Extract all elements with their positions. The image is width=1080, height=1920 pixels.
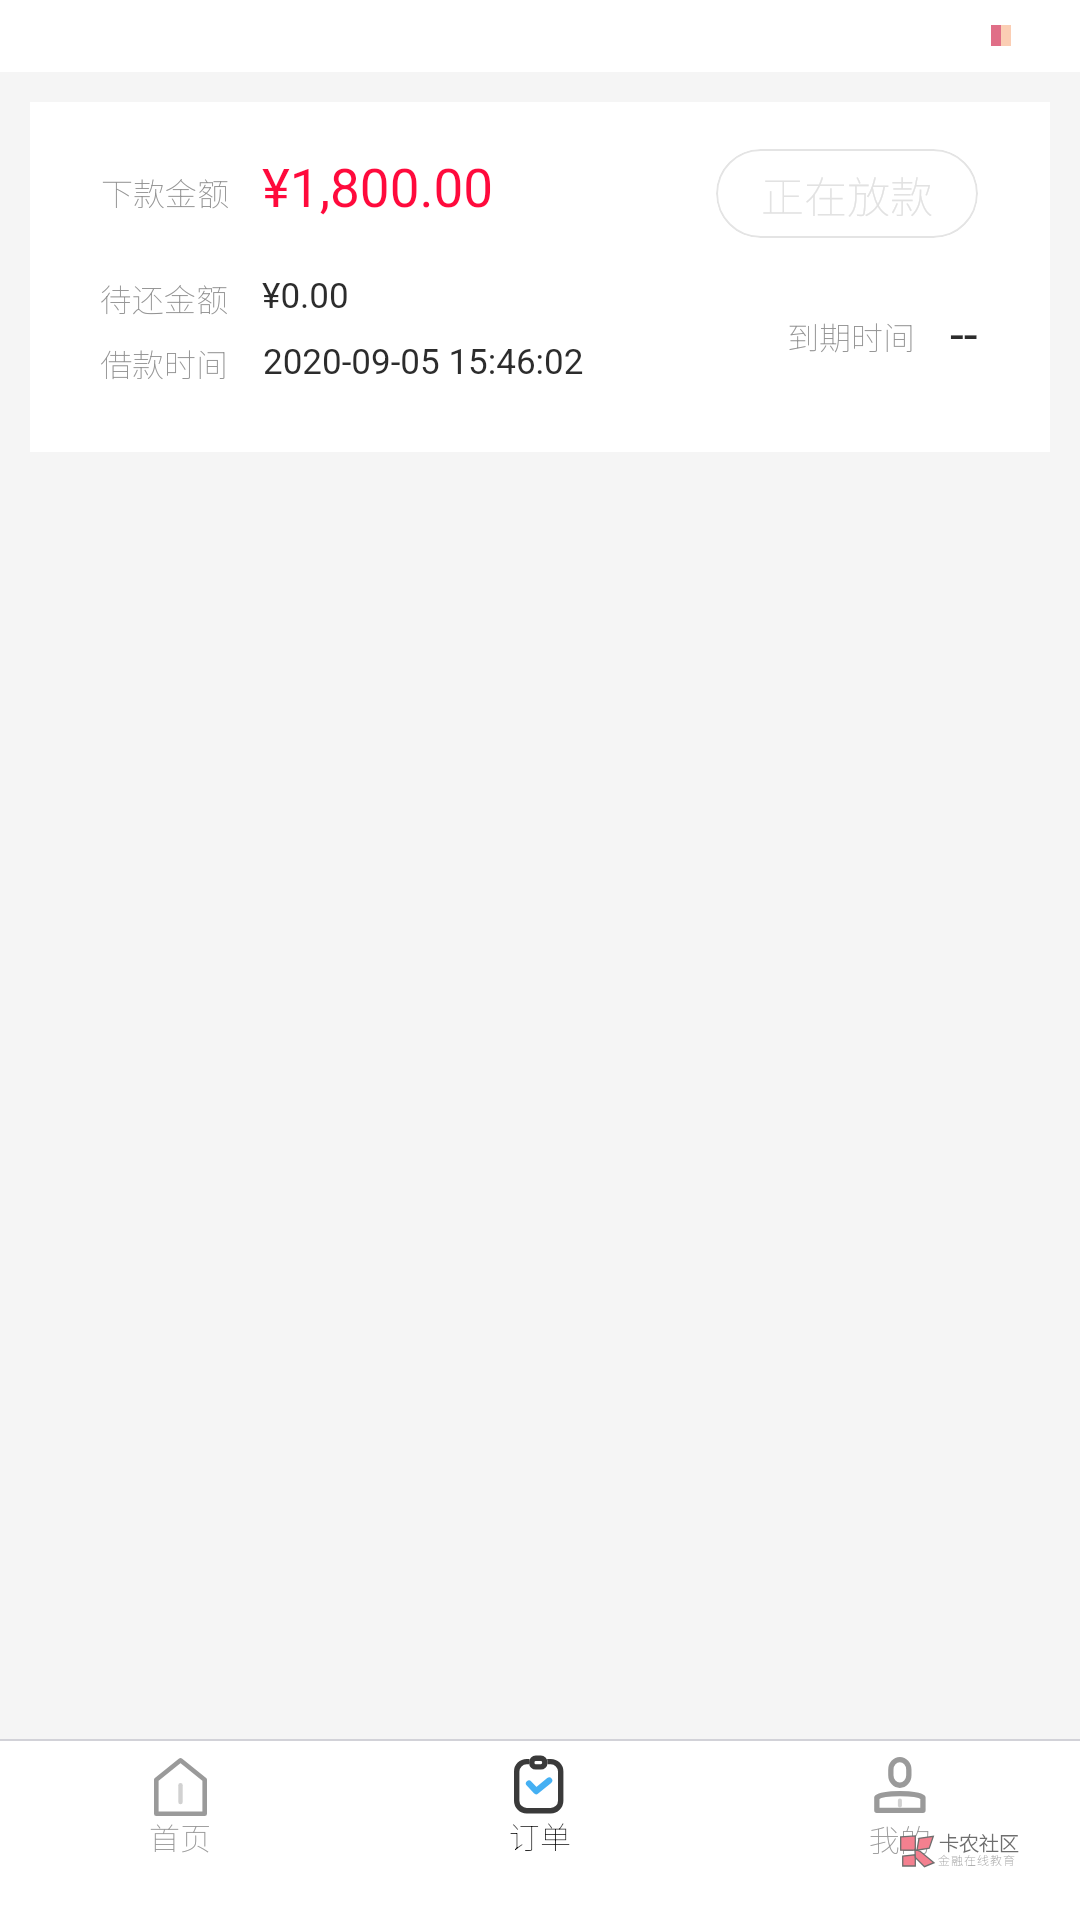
button[interactable]: 正在放款 xyxy=(716,149,978,238)
staticText: 我的 xyxy=(869,1816,931,1861)
staticText: -- xyxy=(950,306,978,365)
button[interactable]: 下款金额 xyxy=(30,102,1050,452)
staticText: 2020-09-05 15:46:02 xyxy=(263,342,584,383)
staticText: 待还金额 xyxy=(100,275,229,321)
button[interactable]: 订单 xyxy=(360,1739,720,1920)
staticText: 下款金额 xyxy=(101,169,230,215)
staticText: 金融在线教育 xyxy=(938,1851,1017,1868)
staticText: 正在放款 xyxy=(761,163,933,225)
staticText: 订单 xyxy=(509,1813,571,1858)
button[interactable]: 首页 xyxy=(0,1739,360,1920)
button[interactable]: App logo xyxy=(991,25,1011,46)
staticText: ¥1,800.00 xyxy=(262,158,493,220)
button[interactable]: 我的 xyxy=(720,1739,1080,1920)
staticText: ¥0.00 xyxy=(262,276,349,317)
staticText: 首页 xyxy=(149,1814,211,1859)
staticText: 借款时间 xyxy=(100,340,229,386)
staticText: 卡农社区 xyxy=(939,1828,1019,1857)
staticText: 到期时间 xyxy=(787,313,916,359)
